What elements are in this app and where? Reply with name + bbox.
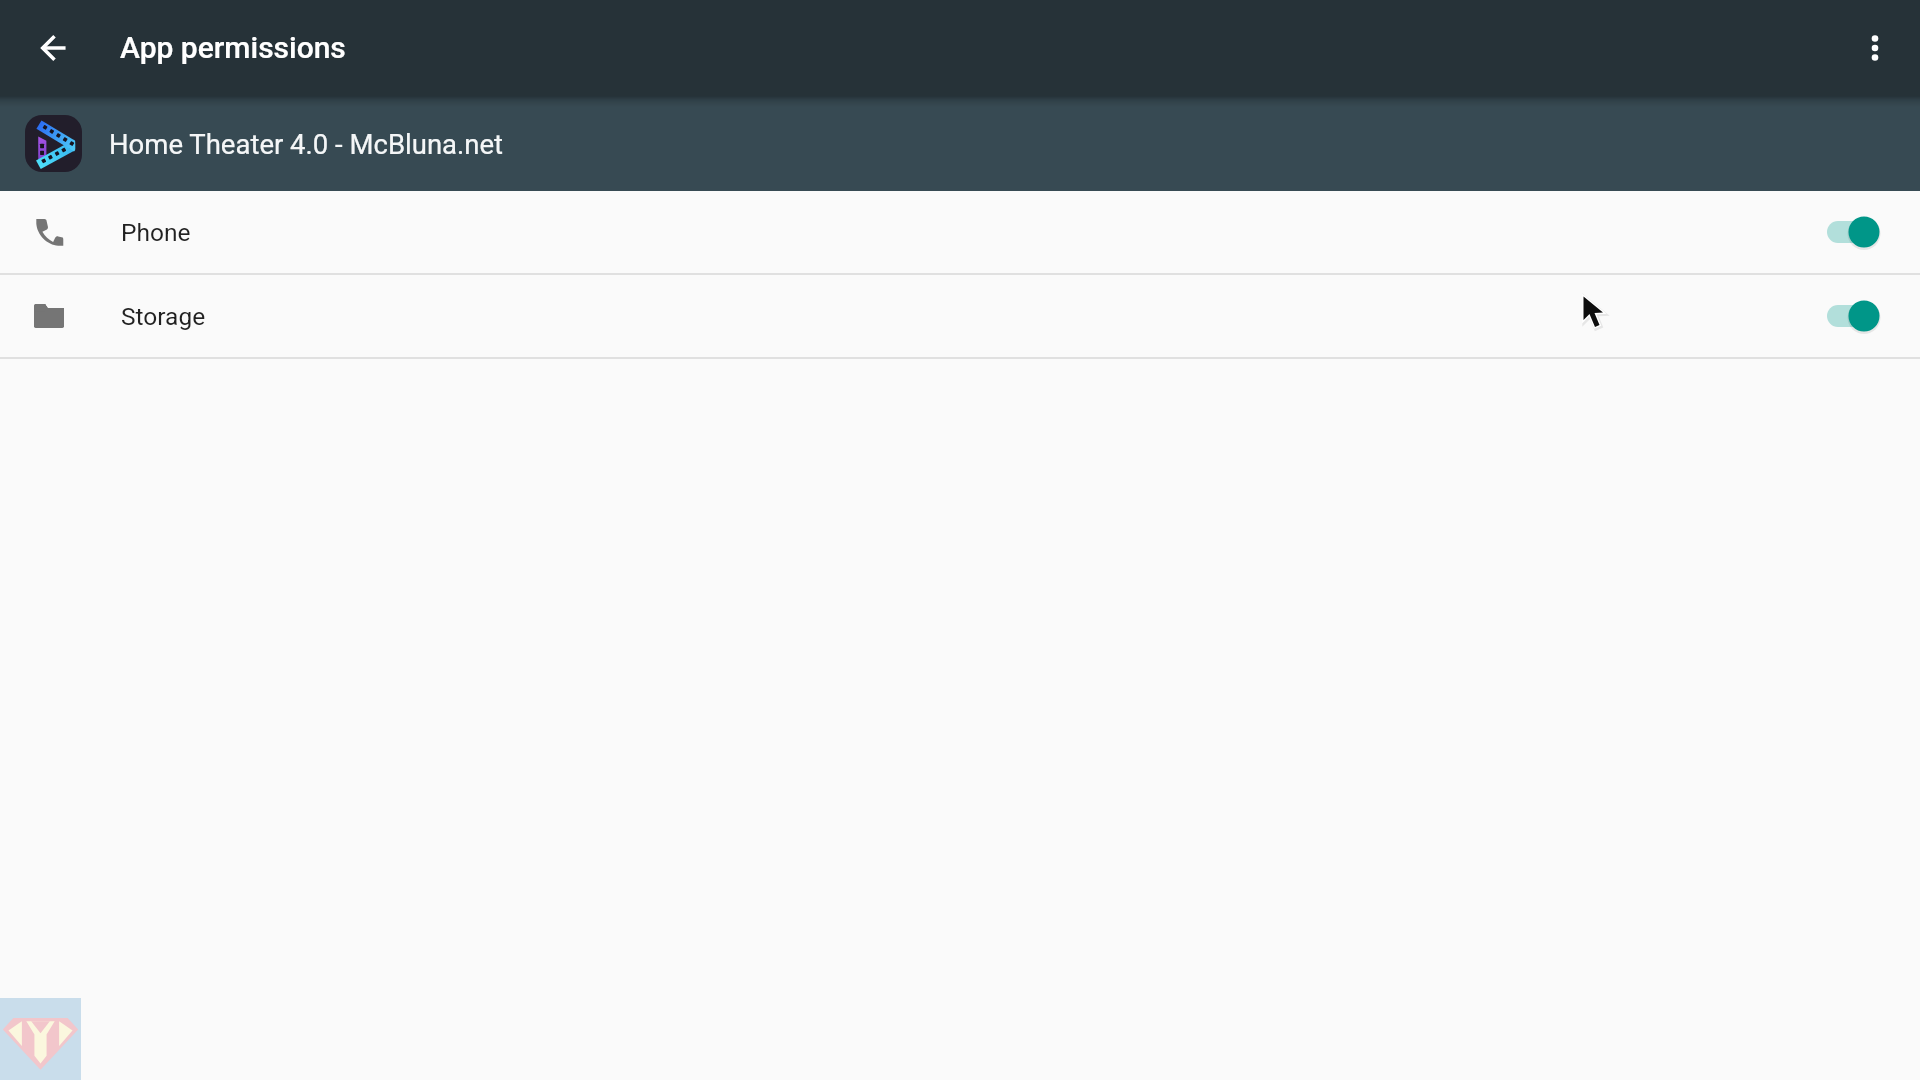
button[interactable]: Phone: [0, 191, 1920, 273]
button[interactable]: More options: [1848, 21, 1902, 75]
staticText: App permissions: [120, 30, 346, 65]
staticText: Phone: [121, 218, 191, 247]
button[interactable]: Toggle permission: [1808, 202, 1888, 262]
button[interactable]: Storage: [0, 275, 1920, 357]
staticText: Storage: [121, 302, 206, 331]
staticText: Home Theater 4.0 - McBluna.net: [109, 128, 504, 160]
button[interactable]: Toggle permission: [1808, 286, 1888, 346]
button[interactable]: Home Theater 4.0 - McBluna.net: [0, 96, 1920, 191]
button[interactable]: Navigate back: [28, 22, 80, 74]
